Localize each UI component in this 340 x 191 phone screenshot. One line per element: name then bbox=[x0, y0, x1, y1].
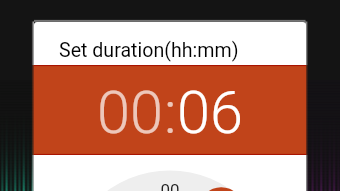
button[interactable]: 00 bbox=[154, 179, 186, 191]
staticText: 06 bbox=[177, 78, 244, 148]
staticText: 00 bbox=[97, 78, 164, 148]
button[interactable]: Hours bbox=[97, 78, 164, 148]
staticText: 00 bbox=[160, 180, 180, 191]
button[interactable]: Set duration(hh:mm) bbox=[34, 36, 306, 65]
staticText: Set duration(hh:mm) bbox=[59, 39, 239, 62]
staticText: : bbox=[164, 78, 177, 148]
button[interactable]: Minutes bbox=[177, 78, 244, 148]
